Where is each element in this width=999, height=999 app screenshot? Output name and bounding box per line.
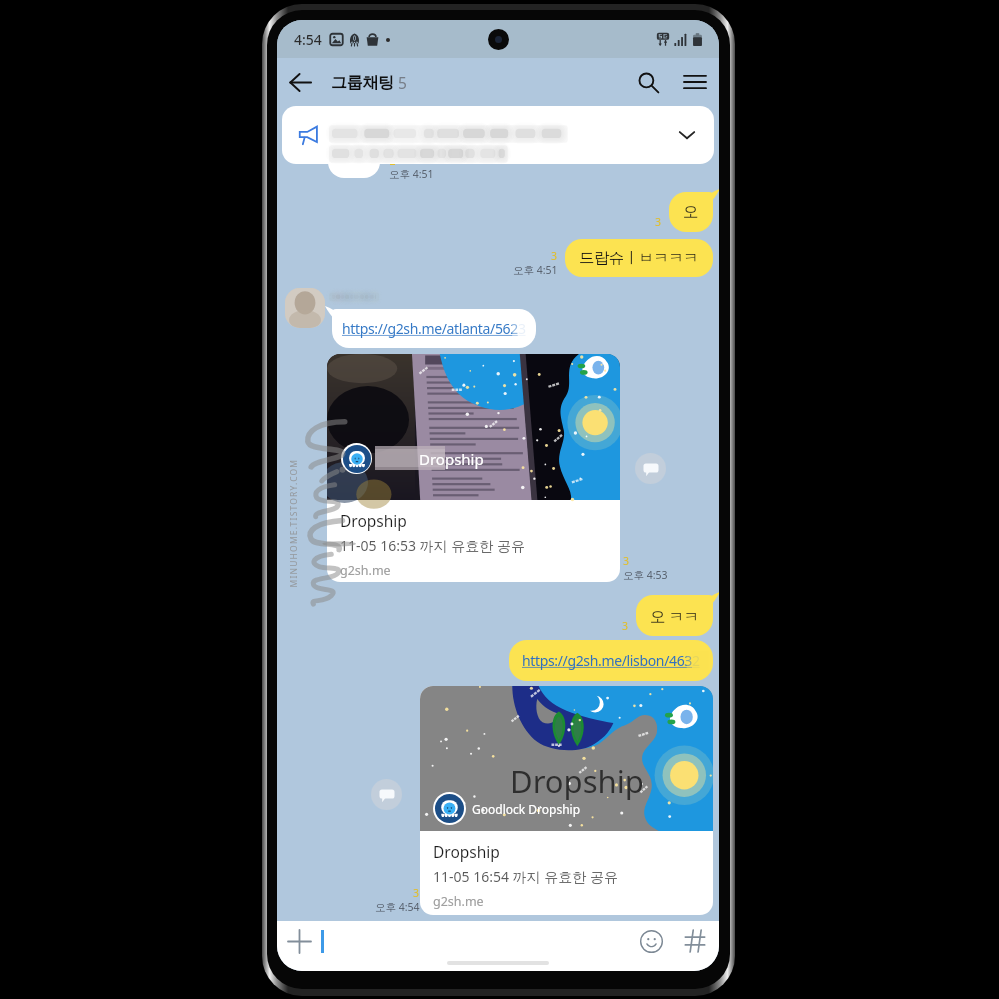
staticText: 오 ㅋㅋ [650,605,699,626]
button[interactable]: Hashtag [673,921,717,961]
staticText: MINUHOME.TISTORY.COM [287,458,299,587]
staticText: 오후 4:54 [375,900,420,914]
staticText: Dropship [510,760,644,802]
staticText: Dropship [433,841,500,862]
button[interactable]: Add attachment [277,921,321,961]
staticText: 드랍슈ㅣㅂㅋㅋㅋ [579,248,699,268]
staticText: 오후 4:51 [389,167,434,181]
button[interactable] [282,106,714,164]
staticText: 11-05 16:54 까지 유효한 공유 [433,867,618,886]
button[interactable]: Reply [635,453,666,484]
staticText: Dropship [340,510,407,531]
staticText: 3 [551,249,558,263]
staticText: 5 [398,72,407,93]
staticText: g2sh.me [433,893,484,910]
staticText: Goodlock Dropship [472,801,581,817]
staticText: 오후 4:53 [623,568,668,582]
staticText: 3 [622,619,629,633]
staticText: 4:54 [294,30,322,49]
staticText: 3 [655,215,662,229]
staticText: 오후 4:51 [513,263,558,277]
button[interactable]: Back [277,59,323,105]
button[interactable]: Dropship [420,686,713,915]
button[interactable]: https://g2sh.me/lisbon/4632 [509,640,713,681]
button[interactable]: Emoji [629,921,673,961]
button[interactable]: Search [625,59,671,105]
staticText: https://g2sh.me/atlanta/5623 [342,319,526,338]
button[interactable]: 오 [669,192,713,232]
staticText: 그룹채팅 [331,73,394,93]
button[interactable]: Dropship [327,354,620,582]
button[interactable]: 드랍슈ㅣㅂㅋㅋㅋ [565,239,713,277]
button[interactable]: Reply [371,779,402,810]
staticText: Dropship [419,449,484,469]
staticText: g2sh.me [340,562,391,579]
button[interactable]: Menu [671,58,719,106]
staticText: https://g2sh.me/lisbon/4632 [522,651,700,670]
staticText: 3 [413,886,420,900]
button[interactable]: https://g2sh.me/atlanta/5623 [332,309,536,348]
staticText: 11-05 16:53 까지 유효한 공유 [340,536,525,555]
button[interactable]: 오 ㅋㅋ [636,595,713,636]
button[interactable]: Profile [285,288,325,328]
staticText: 3 [623,554,630,568]
staticText: 오 [683,202,699,222]
